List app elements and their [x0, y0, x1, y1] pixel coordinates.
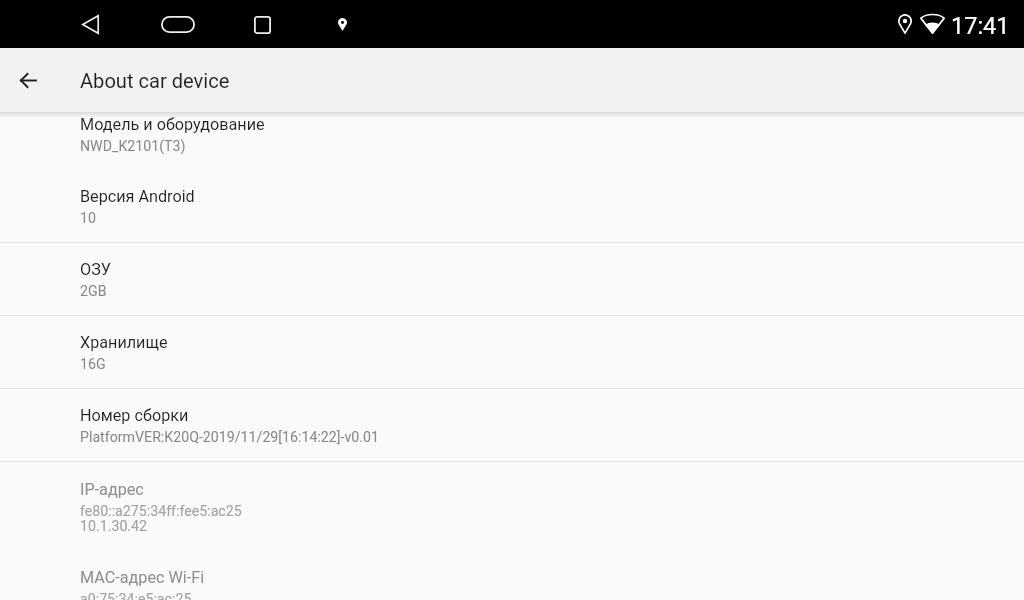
staticText: 17:41 — [951, 12, 1010, 40]
button[interactable]: Хранилище — [0, 316, 1024, 388]
staticText: Модель и оборудование — [80, 115, 265, 134]
button[interactable]: Back — [67, 9, 114, 40]
staticText: Номер сборки — [80, 406, 189, 425]
button[interactable]: Модель и оборудование — [0, 112, 1024, 170]
staticText: Хранилище — [80, 333, 168, 352]
staticText: About car device — [80, 69, 230, 93]
staticText: 10 — [80, 210, 96, 227]
staticText: PlatformVER:K20Q-2019/11/29[16:14:22]-v0… — [80, 429, 380, 446]
button[interactable]: MAC-адрес Wi-Fi — [0, 551, 1024, 600]
staticText: ОЗУ — [80, 260, 111, 279]
button[interactable]: Navigate up — [4, 56, 52, 104]
button[interactable]: IP-адрес — [0, 462, 1024, 551]
other: Location active — [326, 10, 358, 38]
staticText: Версия Android — [80, 187, 195, 206]
button[interactable]: Home — [154, 9, 202, 40]
staticText: 16G — [80, 356, 106, 373]
button[interactable]: Recent apps — [239, 9, 286, 40]
staticText: MAC-адрес Wi-Fi — [80, 568, 205, 587]
staticText: 2GB — [80, 283, 107, 300]
staticText: fe80::a275:34ff:fee5:ac25 10.1.30.42 — [80, 503, 242, 535]
button[interactable]: ОЗУ — [0, 243, 1024, 315]
button[interactable]: Версия Android — [0, 170, 1024, 242]
staticText: a0:75:34:e5:ac:25 — [80, 591, 192, 600]
button[interactable]: Номер сборки — [0, 389, 1024, 461]
staticText: NWD_K2101(T3) — [80, 138, 186, 155]
staticText: IP-адрес — [80, 480, 144, 499]
